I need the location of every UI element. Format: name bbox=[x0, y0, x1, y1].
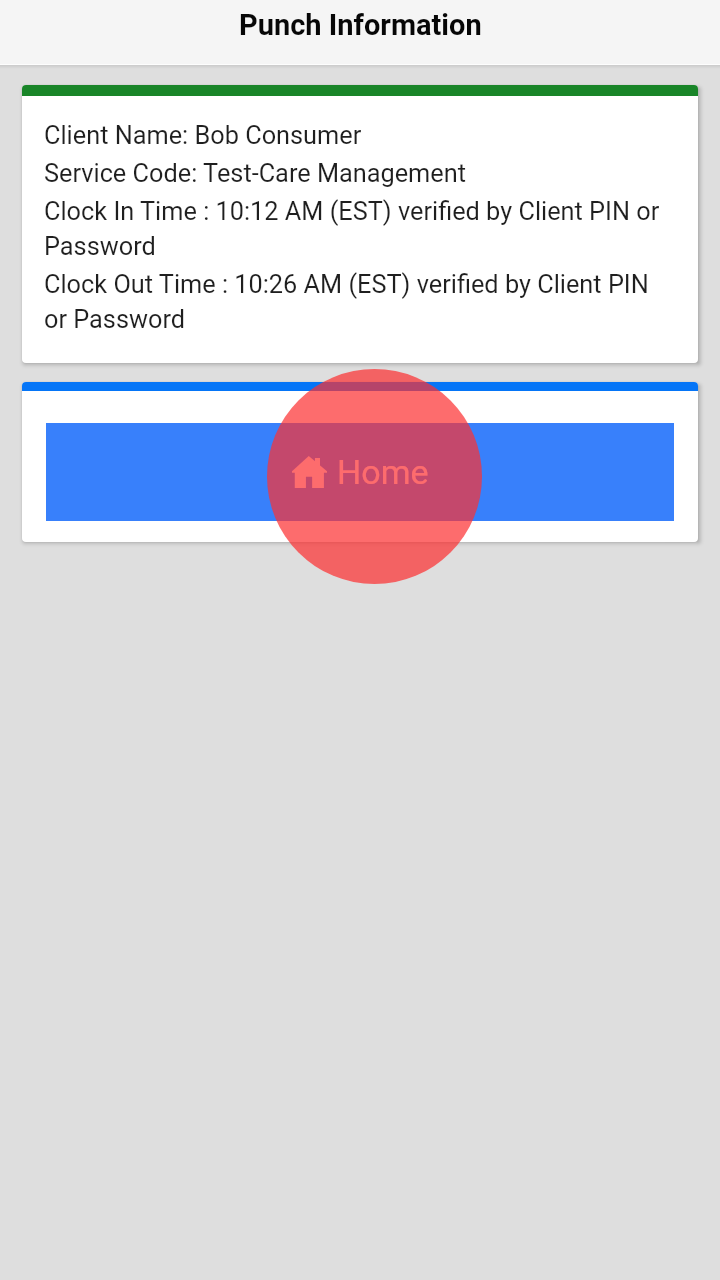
staticText: Clock In Time : 10:12 AM (EST) verified … bbox=[44, 192, 670, 262]
staticText: Client Name: Bob Consumer bbox=[44, 116, 362, 151]
staticText: Clock Out Time : 10:26 AM (EST) verified… bbox=[44, 265, 670, 335]
staticText: Service Code: Test-Care Management bbox=[44, 154, 466, 189]
other: Home bbox=[292, 456, 327, 488]
staticText: Punch Information bbox=[239, 8, 482, 42]
staticText: Home bbox=[337, 452, 429, 492]
button[interactable]: Home bbox=[46, 423, 674, 521]
